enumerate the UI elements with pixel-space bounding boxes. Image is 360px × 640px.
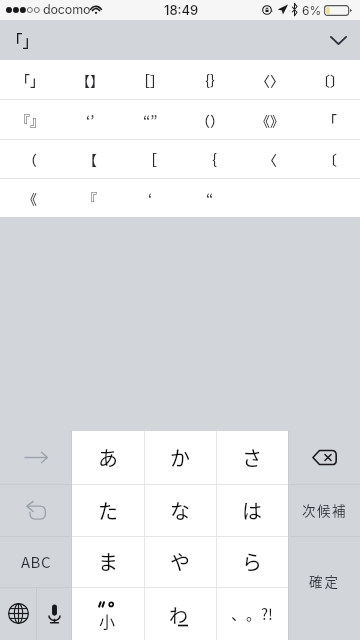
- button[interactable]: ま: [72, 536, 144, 587]
- button[interactable]: 「: [300, 100, 360, 139]
- button[interactable]: わ: [144, 587, 216, 640]
- staticText: 〔〕: [316, 70, 344, 90]
- button[interactable]: ｛｝: [180, 60, 240, 99]
- staticText: （: [23, 149, 37, 169]
- button[interactable]: ABC: [0, 536, 72, 587]
- staticText: docomo: [43, 2, 91, 17]
- button[interactable]: 〔: [300, 140, 360, 178]
- staticText: ｛｝: [196, 70, 224, 90]
- staticText: ABC: [21, 551, 52, 573]
- staticText: な: [170, 496, 190, 525]
- button[interactable]: 【: [60, 140, 120, 178]
- button[interactable]: ‘: [120, 179, 180, 217]
- button[interactable]: 〈〉: [240, 60, 300, 99]
- button[interactable]: Undo: [0, 484, 72, 536]
- button[interactable]: ［: [120, 140, 180, 178]
- button[interactable]: 《: [0, 179, 60, 217]
- staticText: 「」: [16, 70, 44, 90]
- staticText: 次候補: [302, 500, 347, 520]
- button[interactable]: 、。?!: [216, 587, 288, 640]
- button[interactable]: ［］: [120, 60, 180, 99]
- staticText: 、。?!: [231, 603, 273, 625]
- button[interactable]: 『』: [0, 100, 60, 139]
- staticText: あ: [98, 443, 118, 472]
- staticText: 確定: [309, 571, 340, 591]
- staticText: 小: [99, 609, 116, 632]
- staticText: 《: [23, 188, 37, 208]
- button[interactable]: 【】: [60, 60, 120, 99]
- button[interactable]: 〈: [240, 140, 300, 178]
- staticText: 18:49: [164, 2, 199, 18]
- staticText: 【: [83, 149, 97, 169]
- button[interactable]: あ: [72, 431, 144, 484]
- staticText: ‘’: [86, 110, 95, 130]
- staticText: ‘: [148, 188, 153, 208]
- button[interactable]: ｛: [180, 140, 240, 178]
- staticText: た: [98, 496, 118, 525]
- staticText: 『』: [16, 110, 44, 130]
- button[interactable]: “: [180, 179, 240, 217]
- button[interactable]: Change keyboard: [0, 587, 36, 640]
- button[interactable]: 次候補: [288, 484, 360, 536]
- button[interactable]: “”: [120, 100, 180, 139]
- button[interactable]: さ: [216, 431, 288, 484]
- button[interactable]: た: [72, 484, 144, 536]
- staticText: 「」: [7, 29, 39, 51]
- button[interactable]: 『: [60, 179, 120, 217]
- button[interactable]: 「」: [0, 20, 60, 60]
- staticText: “”: [143, 110, 158, 130]
- button[interactable]: 《》: [240, 100, 300, 139]
- button[interactable]: （: [0, 140, 60, 178]
- button[interactable]: 「」: [0, 60, 60, 99]
- staticText: “: [206, 188, 214, 208]
- staticText: ［: [143, 149, 157, 169]
- button[interactable]: は: [216, 484, 288, 536]
- staticText: 〈〉: [256, 70, 284, 90]
- staticText: か: [170, 443, 190, 472]
- staticText: は: [242, 496, 262, 525]
- staticText: 「: [323, 110, 337, 130]
- button[interactable]: ‘’: [60, 100, 120, 139]
- staticText: ｛: [203, 149, 217, 169]
- button[interactable]: Hide candidates: [316, 20, 360, 60]
- staticText: ［］: [136, 70, 164, 90]
- button[interactable]: 小: [72, 587, 144, 640]
- staticText: 『: [83, 188, 97, 208]
- button[interactable]: Insert space: [0, 431, 72, 484]
- button[interactable]: 確定: [288, 536, 360, 640]
- staticText: 〔: [323, 149, 337, 169]
- button[interactable]: （）: [180, 100, 240, 139]
- button[interactable]: や: [144, 536, 216, 587]
- button[interactable]: Dictation: [36, 587, 72, 640]
- button[interactable]: な: [144, 484, 216, 536]
- staticText: ら: [242, 547, 262, 576]
- staticText: さ: [242, 443, 262, 472]
- staticText: ま: [98, 547, 118, 576]
- staticText: わ: [169, 601, 189, 629]
- staticText: （）: [196, 110, 224, 130]
- staticText: 【】: [76, 70, 104, 90]
- staticText: 〈: [263, 149, 277, 169]
- button[interactable]: ら: [216, 536, 288, 587]
- staticText: や: [170, 547, 190, 576]
- staticText: 6%: [302, 3, 322, 18]
- button[interactable]: か: [144, 431, 216, 484]
- button[interactable]: 〔〕: [300, 60, 360, 99]
- staticText: 《》: [256, 110, 284, 130]
- button[interactable]: Delete: [288, 431, 360, 484]
